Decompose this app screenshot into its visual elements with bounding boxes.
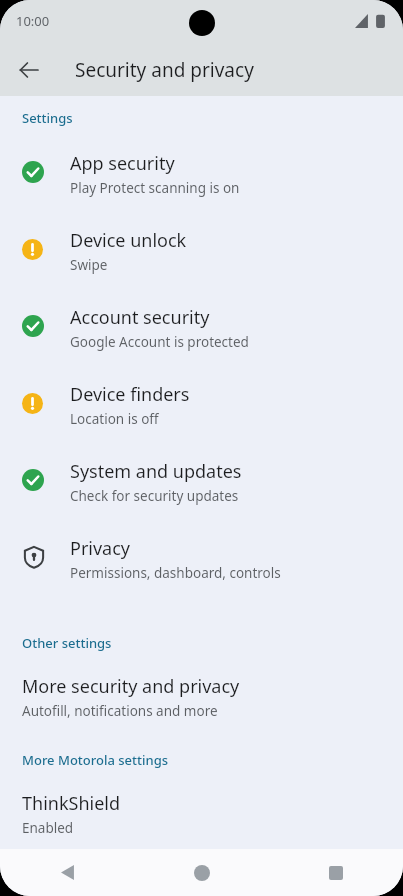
staticText: More Motorola settings bbox=[22, 751, 169, 769]
button[interactable]: Privacy bbox=[0, 535, 403, 612]
staticText: Device finders bbox=[70, 382, 190, 407]
staticText: Autofill, notifications and more bbox=[22, 702, 218, 720]
button[interactable]: App security bbox=[0, 150, 403, 227]
staticText: Device unlock bbox=[70, 228, 187, 253]
staticText: Permissions, dashboard, controls bbox=[70, 564, 281, 582]
staticText: Security and privacy bbox=[75, 57, 254, 83]
button[interactable]: Account security bbox=[0, 304, 403, 381]
staticText: Enabled bbox=[22, 819, 74, 837]
staticText: Play Protect scanning is on bbox=[70, 179, 240, 197]
button[interactable]: ThinkShield bbox=[0, 789, 403, 843]
button[interactable]: System and updates bbox=[0, 458, 403, 535]
staticText: Swipe bbox=[70, 256, 108, 274]
button[interactable]: Home bbox=[135, 849, 269, 896]
staticText: Settings bbox=[22, 109, 73, 127]
staticText: Other settings bbox=[22, 634, 112, 652]
button[interactable]: Back bbox=[0, 849, 135, 896]
staticText: Location is off bbox=[70, 410, 159, 428]
staticText: ThinkShield bbox=[22, 791, 121, 816]
staticText: System and updates bbox=[70, 459, 242, 484]
staticText: App security bbox=[70, 151, 175, 176]
button[interactable]: Back bbox=[8, 49, 50, 91]
button[interactable]: More security and privacy bbox=[0, 672, 403, 726]
staticText: More security and privacy bbox=[22, 674, 240, 699]
button[interactable]: Device finders bbox=[0, 381, 403, 458]
button[interactable]: Recent apps bbox=[269, 849, 403, 896]
button[interactable]: Device unlock bbox=[0, 227, 403, 304]
staticText: Account security bbox=[70, 305, 210, 330]
staticText: Check for security updates bbox=[70, 487, 239, 505]
staticText: Privacy bbox=[70, 536, 131, 561]
staticText: Google Account is protected bbox=[70, 333, 249, 351]
staticText: 10:00 bbox=[16, 12, 50, 30]
